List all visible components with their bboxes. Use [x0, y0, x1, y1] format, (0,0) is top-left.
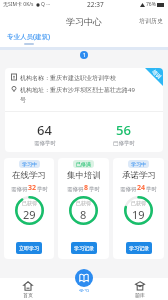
staticText: 已修满: [76, 161, 91, 167]
staticText: Q ···: [41, 1, 51, 8]
staticText: 学习记录: [74, 245, 94, 251]
button[interactable]: 学习记录: [71, 242, 97, 254]
staticText: 机构地址：重庆市沙坪坝区烈士墓壮志路49号: [20, 86, 137, 104]
staticText: 学习记录: [129, 245, 149, 251]
staticText: 29: [23, 207, 36, 222]
staticText: 76%: [146, 1, 156, 8]
staticText: 专业人员(建筑): [7, 32, 51, 41]
staticText: 首页: [23, 292, 33, 298]
button[interactable]: 集中培训: [58, 158, 109, 259]
staticText: 64: [37, 121, 52, 139]
staticText: 集中培训: [67, 170, 101, 181]
staticText: 承诺学习: [122, 170, 156, 181]
staticText: 学习中心: [66, 16, 102, 27]
staticText: 已获得: [76, 200, 91, 206]
other: 学习: [79, 273, 89, 283]
staticText: 学时: [146, 186, 157, 193]
staticText: 培训: [151, 68, 163, 80]
staticText: 题库: [135, 292, 145, 298]
staticText: 19: [132, 207, 145, 222]
other: 题库: [135, 281, 145, 291]
staticText: 需修得: [11, 186, 28, 193]
button[interactable]: 在线学习: [4, 158, 54, 259]
staticText: 需修学时: [34, 140, 56, 147]
staticText: 学习中: [22, 161, 37, 167]
staticText: 无SIM卡 0K/s: [3, 1, 34, 8]
staticText: 1: [83, 52, 86, 59]
staticText: 56: [116, 121, 131, 139]
staticText: 立即学习: [19, 245, 39, 251]
staticText: 机构名称：重庆市建达职业培训学校: [20, 74, 116, 82]
staticText: 22:37: [87, 0, 104, 9]
staticText: 32: [28, 183, 37, 193]
button[interactable]: 专业人员(建筑): [7, 32, 51, 45]
staticText: 需修得: [120, 186, 137, 193]
button[interactable]: 培训历史: [134, 13, 168, 29]
staticText: 学时: [89, 186, 100, 193]
button[interactable]: 立即学习: [16, 242, 42, 254]
staticText: 需修得: [67, 186, 84, 193]
button[interactable]: 题库: [112, 279, 168, 300]
staticText: 学习: [79, 288, 89, 292]
button[interactable]: 学习: [56, 278, 112, 300]
staticText: 在线学习: [12, 170, 46, 181]
staticText: 已获得: [131, 200, 146, 206]
staticText: 8: [80, 207, 87, 222]
staticText: 24: [137, 183, 146, 193]
button[interactable]: 承诺学习: [113, 158, 164, 259]
staticText: 已获得: [22, 200, 37, 206]
staticText: 学习中: [131, 161, 146, 167]
staticText: 学时: [37, 186, 48, 193]
staticText: 8: [84, 183, 89, 193]
staticText: 已修学时: [113, 140, 135, 147]
other: 首页: [23, 281, 33, 291]
button[interactable]: 学习记录: [126, 242, 152, 254]
button[interactable]: 首页: [0, 279, 56, 300]
staticText: 培训历史: [139, 17, 163, 25]
